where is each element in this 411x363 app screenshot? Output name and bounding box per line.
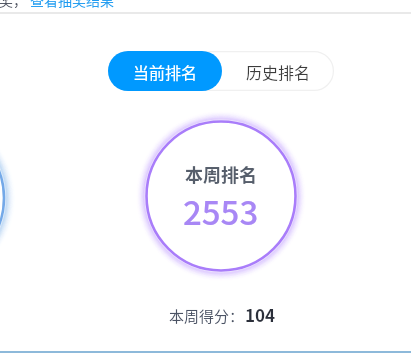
staticText: 本周排名 <box>185 161 257 187</box>
staticText: 查看抽奖结果 <box>30 0 114 8</box>
staticText: 当前排名 <box>133 60 198 83</box>
staticText: 历史排名 <box>246 60 311 83</box>
button[interactable]: 查看抽奖结果 <box>30 0 114 8</box>
button[interactable]: 历史排名 <box>222 51 334 91</box>
staticText: 2553 <box>183 187 259 235</box>
staticText: 奖， <box>0 0 27 8</box>
staticText: 本周得分： <box>169 305 245 327</box>
staticText: 104 <box>245 302 276 327</box>
button[interactable]: 当前排名 <box>108 51 222 91</box>
